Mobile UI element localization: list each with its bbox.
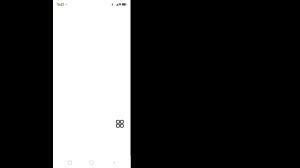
button[interactable]: Recent apps [61,156,78,168]
staticText: 9:41 [57,2,64,7]
button[interactable]: Back [105,156,122,168]
button[interactable]: Home [83,156,100,168]
button[interactable]: Grid [113,117,126,130]
